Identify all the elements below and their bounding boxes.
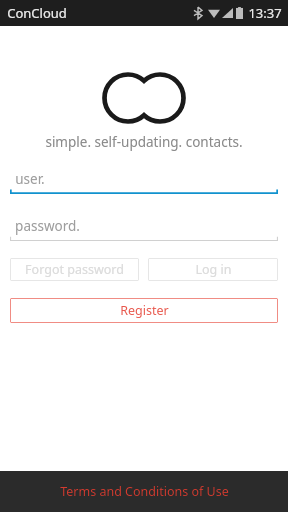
button[interactable]: user. — [0, 169, 288, 194]
staticText: Register — [120, 302, 169, 319]
button[interactable]: Forgot password — [10, 258, 139, 281]
staticText: ConCloud — [7, 4, 67, 22]
staticText: user. — [15, 170, 45, 188]
staticText: password. — [15, 217, 80, 235]
staticText: simple. self-updating. contacts. — [45, 133, 243, 151]
staticText: 13:37 — [248, 4, 282, 22]
button[interactable]: password. — [0, 216, 288, 241]
button[interactable]: Register — [10, 298, 278, 323]
staticText: Log in — [195, 261, 232, 278]
button[interactable]: Terms and Conditions of Use — [0, 471, 288, 512]
staticText: Terms and Conditions of Use — [60, 483, 229, 500]
staticText: Forgot password — [25, 261, 124, 278]
button[interactable]: Log in — [148, 258, 278, 281]
